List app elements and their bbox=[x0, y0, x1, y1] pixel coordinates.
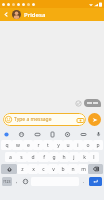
button[interactable]: g bbox=[49, 152, 59, 162]
button[interactable]: c bbox=[38, 164, 48, 174]
button[interactable]: o bbox=[83, 140, 93, 150]
button[interactable]: Pridesa bbox=[12, 10, 46, 19]
staticText: e bbox=[27, 142, 30, 149]
staticText: q bbox=[5, 142, 9, 149]
button[interactable]: Key tool 6 bbox=[94, 130, 102, 138]
button[interactable]: m bbox=[78, 164, 88, 174]
button[interactable]: Shift bbox=[1, 164, 17, 174]
staticText: . bbox=[83, 178, 85, 185]
button[interactable]: q bbox=[1, 140, 12, 150]
staticText: i bbox=[77, 142, 79, 149]
button[interactable]: n bbox=[68, 164, 78, 174]
staticText: n bbox=[71, 166, 75, 173]
button[interactable]: s bbox=[16, 152, 27, 162]
button[interactable]: Enter bbox=[89, 177, 102, 186]
staticText: j bbox=[73, 154, 75, 161]
button[interactable]: Key tool 1 bbox=[17, 130, 25, 138]
staticText: v bbox=[52, 166, 55, 173]
button[interactable]: t bbox=[43, 140, 53, 150]
button[interactable]: f bbox=[38, 152, 49, 162]
staticText: u bbox=[66, 142, 70, 149]
staticText: , bbox=[16, 178, 18, 185]
button[interactable]: Backspace bbox=[88, 164, 103, 174]
button[interactable]: e bbox=[23, 140, 33, 150]
other: Shift bbox=[7, 167, 12, 172]
button[interactable]: p bbox=[93, 140, 103, 150]
button[interactable]: Key tool 0 bbox=[2, 130, 10, 138]
staticText: k bbox=[83, 154, 86, 161]
staticText: h bbox=[62, 154, 66, 161]
button[interactable]: x bbox=[28, 164, 38, 174]
button[interactable]: Period bbox=[81, 177, 87, 186]
button[interactable]: r bbox=[33, 140, 43, 150]
staticText: c bbox=[42, 166, 45, 173]
button[interactable]: Comma bbox=[14, 177, 20, 186]
button[interactable]: j bbox=[69, 152, 79, 162]
button[interactable]: w bbox=[12, 140, 23, 150]
button[interactable]: ?123 bbox=[2, 177, 12, 186]
staticText: b bbox=[61, 166, 65, 173]
button[interactable]: Camera bbox=[76, 116, 84, 124]
staticText: x bbox=[32, 166, 35, 173]
staticText: g bbox=[52, 154, 56, 161]
button[interactable]: b bbox=[58, 164, 68, 174]
button[interactable]: y bbox=[53, 140, 63, 150]
button[interactable]: h bbox=[59, 152, 69, 162]
button[interactable] bbox=[84, 99, 101, 107]
staticText: z bbox=[21, 166, 24, 173]
button[interactable]: d bbox=[27, 152, 38, 162]
button[interactable]: l bbox=[89, 152, 99, 162]
button[interactable]: Back bbox=[2, 10, 11, 19]
button[interactable]: Key tool 2 bbox=[33, 130, 41, 138]
button[interactable]: i bbox=[73, 140, 83, 150]
button[interactable]: Key tool 4 bbox=[63, 130, 71, 138]
staticText: w bbox=[16, 142, 20, 149]
staticText: Pridesa bbox=[24, 11, 46, 19]
button[interactable]: u bbox=[63, 140, 73, 150]
staticText: t bbox=[47, 142, 49, 149]
button[interactable]: Key tool 3 bbox=[48, 130, 56, 138]
button[interactable]: Key tool 5 bbox=[79, 130, 87, 138]
staticText: r bbox=[37, 142, 40, 149]
staticText: d bbox=[31, 154, 35, 161]
staticText: p bbox=[96, 142, 100, 149]
staticText: l bbox=[93, 154, 95, 161]
button[interactable]: v bbox=[48, 164, 58, 174]
button[interactable]: k bbox=[79, 152, 89, 162]
staticText: o bbox=[86, 142, 90, 149]
staticText: Type a message bbox=[14, 116, 76, 123]
staticText: s bbox=[20, 154, 23, 161]
staticText: m bbox=[81, 166, 86, 173]
button[interactable]: Type a message bbox=[3, 113, 86, 126]
other: Backspace bbox=[93, 166, 99, 172]
button[interactable]: Emoji bbox=[22, 177, 29, 186]
button[interactable]: z bbox=[17, 164, 28, 174]
button[interactable]: a bbox=[5, 152, 16, 162]
staticText: f bbox=[43, 154, 45, 161]
staticText: a bbox=[9, 154, 12, 161]
staticText: ?123 bbox=[3, 179, 11, 184]
staticText: y bbox=[57, 142, 60, 149]
button[interactable]: Send bbox=[88, 113, 101, 126]
